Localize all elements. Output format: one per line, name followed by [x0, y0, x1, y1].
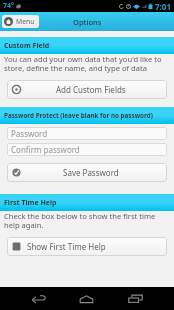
staticText: Menu: [16, 17, 35, 26]
staticText: Password Protect (leave blank for no pas…: [4, 111, 153, 120]
button[interactable]: Home: [64, 287, 109, 310]
staticText: 7:01: [155, 1, 171, 12]
button[interactable]: Menu: [2, 15, 39, 28]
staticText: Password: [11, 128, 48, 139]
staticText: Options: [73, 17, 102, 27]
staticText: Show First Time Help: [27, 241, 106, 252]
staticText: Save Password: [63, 167, 119, 178]
button[interactable]: Confirm password: [7, 143, 167, 156]
staticText: You can add your own data that you'd lik…: [4, 54, 170, 74]
staticText: Add Custom Fields: [56, 84, 126, 95]
staticText: Check the box below to show the first ti…: [4, 211, 170, 231]
staticText: Confirm password: [11, 144, 80, 155]
button[interactable]: Show First Time Help: [7, 237, 167, 256]
staticText: First Time Help: [4, 198, 57, 208]
button[interactable]: Recent apps: [113, 287, 158, 310]
button[interactable]: Add Custom Fields: [7, 80, 167, 99]
staticText: Custom Field: [4, 41, 50, 51]
button[interactable]: Back: [16, 287, 61, 310]
button[interactable]: Save Password: [7, 163, 167, 182]
staticText: 74°: [3, 1, 14, 11]
button[interactable]: Password: [7, 127, 167, 140]
